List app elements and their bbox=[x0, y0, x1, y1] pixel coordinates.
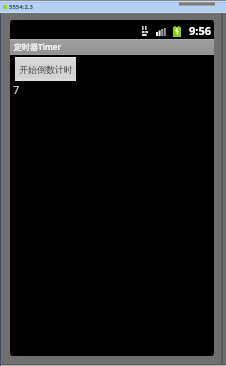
staticText: 5554:2.3 bbox=[9, 3, 33, 11]
staticText: 9:56 bbox=[189, 23, 211, 38]
button[interactable]: 开始倒数计时 bbox=[15, 57, 76, 81]
staticText: 开始倒数计时 bbox=[19, 64, 73, 75]
staticText: 定时器Timer bbox=[14, 41, 62, 52]
other: Mobile data 3G bbox=[142, 26, 149, 36]
other: Battery charging bbox=[173, 26, 181, 37]
staticText: 7 bbox=[13, 82, 20, 97]
other: Signal strength bbox=[156, 28, 166, 36]
